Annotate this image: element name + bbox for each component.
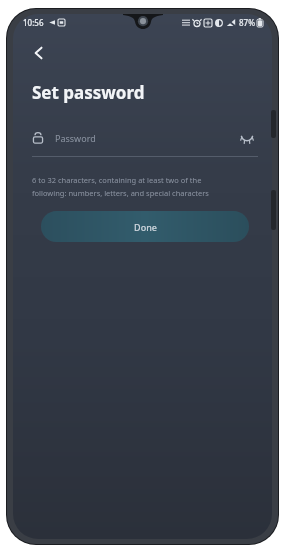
staticText: 6 to 32 characters, containing at least … [32,175,209,198]
staticText: Done [134,221,157,233]
button[interactable]: Done [41,211,249,242]
staticText: Set password [32,81,145,104]
button[interactable]: Password [32,126,258,150]
staticText: 10:56 [23,17,44,28]
button[interactable]: Back [21,35,57,71]
staticText: Password [55,132,96,144]
staticText: 87% [239,17,255,28]
button[interactable]: Show password [236,127,258,149]
